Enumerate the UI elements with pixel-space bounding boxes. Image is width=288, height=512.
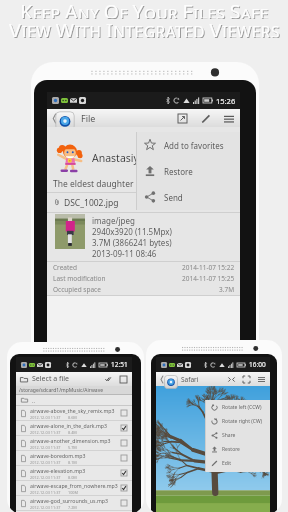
button[interactable]: DSC_1002.jpg (54, 195, 240, 211)
staticText: KEEP ANY OF YOUR FILES SAFE (21, 0, 270, 19)
staticText: Rotate right (CW) (222, 418, 263, 425)
staticText: Occupied space (53, 285, 101, 294)
staticText: 2012-12-03 11:37 (30, 415, 61, 420)
staticText: 2013-09-11 08:46 (92, 248, 157, 259)
staticText: airwave-another_dimension.mp3 (30, 437, 111, 444)
staticText: Safari (181, 375, 199, 384)
staticText: DSC_1002.jpg (64, 197, 119, 209)
staticText: Restore (164, 166, 193, 177)
staticText: airwave-boredom.mp3 (30, 452, 86, 459)
staticText: 2012-12-03 11:37 (30, 490, 61, 495)
staticText: 2012-12-03 11:37 (30, 460, 61, 465)
staticText: airwave-god_surrounds_us.mp3 (30, 497, 108, 504)
button[interactable]: More options (256, 374, 267, 385)
button[interactable]: Rotate right (CW) (205, 414, 270, 428)
staticText: airwave-escape_from_nowhere.mp3 (30, 482, 118, 489)
staticText: 2014-11-07 15:22 (182, 263, 235, 272)
button[interactable]: Fullscreen (241, 374, 252, 385)
button[interactable]: airwave-another_dimension.mp3 (16, 436, 132, 451)
staticText: 5.7M (68, 445, 77, 450)
staticText: Rotate left (CCW) (222, 404, 262, 411)
button[interactable]: airwave-god_surrounds_us.mp3 (16, 496, 132, 511)
button[interactable]: Rotate left (CCW) (205, 400, 270, 414)
staticText: 8.6M (68, 415, 77, 420)
button[interactable]: Select all (104, 374, 114, 384)
staticText: 100M (68, 490, 78, 495)
staticText: airwave-elevation.mp3 (30, 467, 86, 474)
staticText: 2014-11-07 15:25 (182, 274, 235, 283)
button[interactable]: Back (49, 113, 60, 124)
staticText: 12:51 (111, 360, 128, 369)
staticText: image/jpeg (92, 215, 135, 226)
staticText: VIEW WITH INTEGRATED VIEWERS (10, 18, 281, 38)
button[interactable]: Edit (198, 111, 213, 126)
button[interactable]: Toggle selection (118, 374, 128, 384)
staticText: KEEP ANY OF YOUR FILES SAFE (20, 0, 269, 18)
staticText: Share (222, 432, 236, 439)
staticText: Last modification (53, 274, 106, 283)
staticText: The eldest daughter (53, 178, 134, 190)
staticText: File (81, 112, 96, 124)
staticText: 3.7M (3866241 bytes) (92, 237, 172, 248)
staticText: Restore (222, 446, 240, 453)
button[interactable]: airwave-alone_in_the_dark.mp3 (16, 421, 132, 436)
button[interactable]: airwave-above_the_sky_remix.mp3 (16, 406, 132, 421)
staticText: /storage/sdcard1/mpMusic/Airwave (19, 387, 104, 394)
button[interactable]: More options (221, 111, 236, 126)
staticText: 8.1M (68, 460, 77, 465)
button[interactable]: Fit to screen (226, 374, 237, 385)
staticText: Anastasiya (92, 151, 145, 165)
staticText: 2012-12-03 11:37 (30, 445, 61, 450)
staticText: Edit (222, 460, 231, 467)
staticText: .. (32, 397, 35, 404)
staticText: 8.0M (68, 475, 77, 480)
staticText: 8.4M (68, 430, 77, 435)
button[interactable]: airwave-elevation.mp3 (16, 466, 132, 481)
staticText: 2012-12-03 11:37 (30, 505, 61, 510)
staticText: 16:00 (249, 360, 266, 369)
button[interactable]: Back (158, 375, 166, 383)
button[interactable]: airwave-boredom.mp3 (16, 451, 132, 466)
staticText: Add to favorites (164, 140, 224, 151)
staticText: airwave-alone_in_the_dark.mp3 (30, 422, 107, 429)
button[interactable]: Edit (205, 456, 270, 470)
staticText: 15:26 (216, 96, 236, 106)
staticText: 2940x3920 (11.5Mpx) (92, 226, 172, 237)
button[interactable]: Send (136, 184, 240, 210)
button[interactable]: Open with (175, 111, 190, 126)
button[interactable]: airwave-escape_from_nowhere.mp3 (16, 481, 132, 496)
button[interactable]: Add to favorites (136, 132, 240, 158)
staticText: 2012-12-03 11:37 (30, 430, 61, 435)
staticText: 3.7M (219, 285, 235, 294)
button[interactable]: Share (205, 428, 270, 442)
staticText: VIEW WITH INTEGRATED VIEWERS (9, 17, 280, 37)
staticText: 7.2M (68, 505, 77, 510)
staticText: Select a file (32, 374, 69, 384)
button[interactable]: Restore (205, 442, 270, 456)
button[interactable]: Restore (136, 158, 240, 184)
staticText: airwave-above_the_sky_remix.mp3 (30, 407, 115, 414)
button[interactable]: .. (16, 395, 132, 405)
staticText: Send (164, 192, 183, 203)
staticText: Created (53, 263, 77, 272)
staticText: 2012-12-03 11:37 (30, 475, 61, 480)
